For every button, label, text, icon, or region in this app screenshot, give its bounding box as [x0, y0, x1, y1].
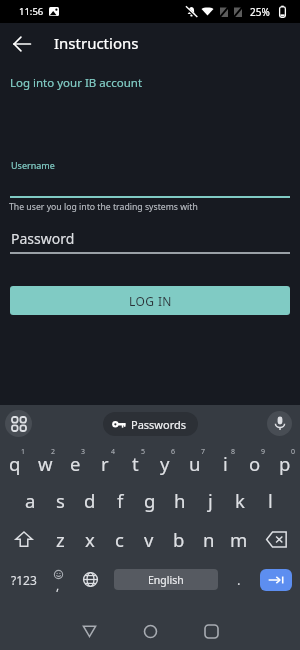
staticText: 7: [201, 447, 206, 457]
button[interactable]: Home: [120, 611, 180, 650]
staticText: 5: [141, 447, 146, 457]
button[interactable]: x: [75, 520, 104, 559]
button[interactable]: z: [46, 520, 75, 559]
button[interactable]: 5: [120, 442, 150, 481]
staticText: 8: [231, 447, 236, 457]
button[interactable]: 7: [180, 442, 210, 481]
staticText: n: [203, 527, 215, 552]
staticText: h: [174, 488, 186, 513]
staticText: u: [189, 451, 201, 476]
staticText: Username: [11, 159, 55, 171]
button[interactable]: Passwords: [103, 412, 198, 436]
button[interactable]: d: [75, 481, 105, 520]
staticText: p: [279, 451, 291, 476]
button[interactable]: LOG IN: [10, 286, 290, 315]
staticText: z: [56, 527, 65, 552]
staticText: 9: [261, 447, 266, 457]
button[interactable]: Voice input: [267, 411, 292, 436]
button[interactable]: a: [15, 481, 45, 520]
button[interactable]: l: [255, 481, 285, 520]
staticText: The user you log into the trading system…: [9, 201, 198, 213]
button[interactable]: 9: [240, 442, 270, 481]
staticText: 11:56: [19, 5, 44, 18]
staticText: ?123: [11, 572, 37, 588]
staticText: 25%: [250, 5, 270, 19]
button[interactable]: ,: [44, 559, 72, 600]
button[interactable]: Keyboard options: [5, 410, 32, 437]
button[interactable]: b: [164, 520, 194, 559]
button[interactable]: Change language: [75, 559, 105, 600]
staticText: 6: [171, 447, 176, 457]
button[interactable]: 6: [150, 442, 180, 481]
staticText: 4: [111, 447, 116, 457]
button[interactable]: Recent apps: [181, 611, 241, 650]
staticText: y: [160, 451, 170, 476]
button[interactable]: ?123: [0, 559, 48, 600]
staticText: Instructions: [54, 33, 139, 53]
staticText: f: [117, 488, 124, 513]
staticText: c: [115, 527, 124, 552]
staticText: s: [56, 488, 65, 513]
button[interactable]: English: [114, 569, 218, 590]
button[interactable]: .: [224, 559, 254, 600]
staticText: 2: [51, 447, 56, 457]
button[interactable]: 1: [0, 442, 30, 481]
button[interactable]: 3: [60, 442, 90, 481]
staticText: b: [173, 527, 185, 552]
button[interactable]: Backspace: [254, 520, 300, 559]
staticText: .: [237, 571, 241, 589]
staticText: x: [85, 527, 95, 552]
staticText: Password: [11, 229, 75, 248]
button[interactable]: g: [135, 481, 165, 520]
staticText: LOG IN: [129, 293, 172, 309]
staticText: g: [144, 488, 156, 513]
staticText: k: [235, 488, 245, 513]
staticText: ,: [56, 577, 60, 593]
staticText: o: [249, 451, 261, 476]
staticText: 3: [81, 447, 86, 457]
staticText: m: [230, 527, 248, 552]
button[interactable]: Back: [59, 611, 119, 650]
staticText: English: [148, 573, 184, 587]
staticText: d: [84, 488, 96, 513]
button[interactable]: s: [45, 481, 75, 520]
button[interactable]: Shift: [0, 520, 46, 559]
button[interactable]: h: [165, 481, 195, 520]
button[interactable]: v: [134, 520, 164, 559]
button[interactable]: k: [225, 481, 255, 520]
button[interactable]: Back: [10, 32, 34, 56]
button[interactable]: 4: [90, 442, 120, 481]
staticText: t: [132, 451, 139, 476]
staticText: 0: [291, 447, 296, 457]
button[interactable]: 0: [270, 442, 300, 481]
staticText: i: [223, 451, 228, 476]
button[interactable]: n: [194, 520, 224, 559]
staticText: q: [9, 451, 21, 476]
staticText: r: [101, 451, 109, 476]
staticText: l: [268, 488, 273, 513]
staticText: a: [25, 488, 36, 513]
staticText: 1: [21, 447, 26, 457]
button[interactable]: j: [195, 481, 225, 520]
button[interactable]: Enter: [260, 569, 292, 591]
button[interactable]: 8: [210, 442, 240, 481]
staticText: w: [38, 451, 53, 476]
staticText: j: [208, 488, 213, 513]
button[interactable]: m: [224, 520, 254, 559]
staticText: Log into your IB account: [10, 75, 143, 91]
button[interactable]: f: [105, 481, 135, 520]
staticText: v: [144, 527, 154, 552]
staticText: Passwords: [131, 417, 187, 432]
button[interactable]: c: [104, 520, 134, 559]
button[interactable]: 2: [30, 442, 60, 481]
staticText: e: [70, 451, 81, 476]
